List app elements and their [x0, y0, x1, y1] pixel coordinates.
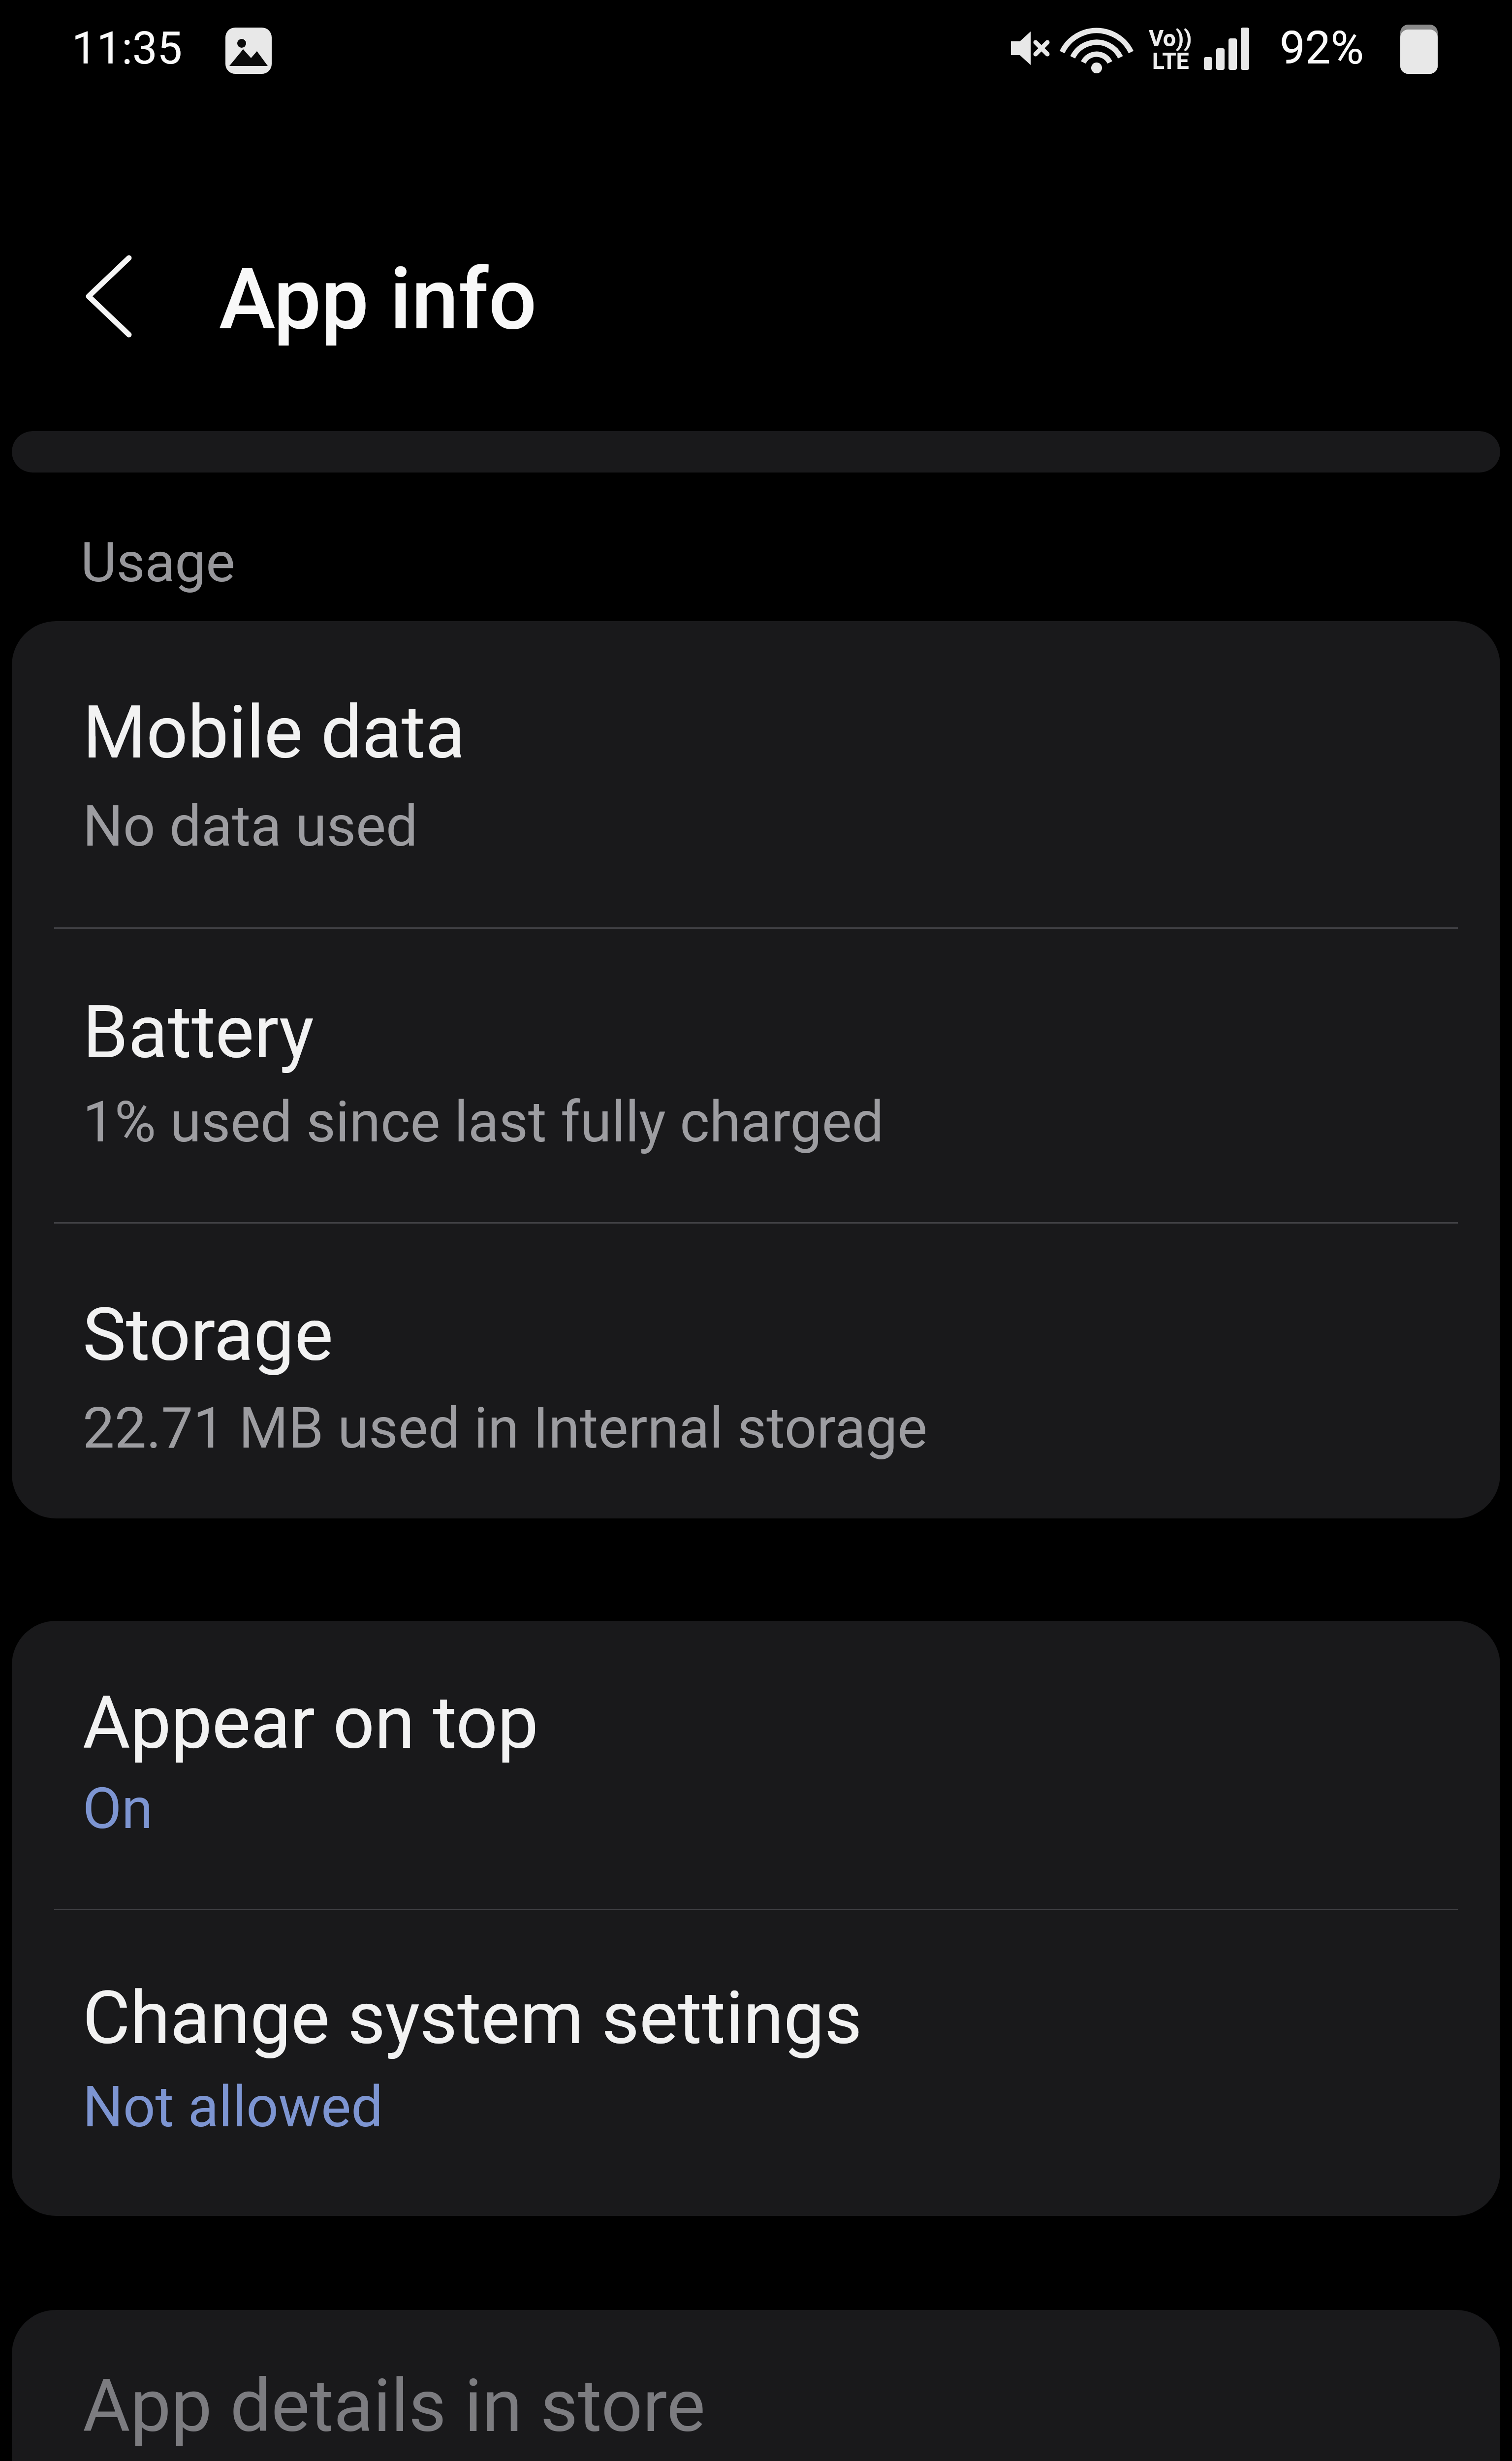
button[interactable]: Storage: [12, 1224, 1500, 1518]
staticText: 11:35: [72, 23, 183, 74]
staticText: Not allowed: [83, 2074, 383, 2140]
button[interactable]: Mobile data: [12, 621, 1500, 927]
staticText: Mobile data: [83, 690, 465, 775]
staticText: Usage: [81, 530, 235, 595]
button[interactable]: Appear on top: [12, 1621, 1500, 1909]
staticText: Storage: [83, 1293, 333, 1378]
staticText: 92%: [1280, 22, 1364, 75]
staticText: App details in store: [83, 2364, 705, 2449]
staticText: No data used: [83, 793, 418, 859]
button[interactable]: [69, 251, 153, 345]
staticText: LTE: [1152, 48, 1189, 74]
staticText: App info: [219, 250, 537, 349]
button[interactable]: Change system settings: [12, 1910, 1500, 2216]
button[interactable]: Battery: [12, 929, 1500, 1222]
staticText: Change system settings: [83, 1976, 862, 2061]
staticText: Vo)): [1149, 25, 1192, 52]
staticText: 22.71 MB used in Internal storage: [83, 1395, 928, 1461]
staticText: On: [83, 1775, 153, 1842]
staticText: Appear on top: [83, 1680, 538, 1766]
staticText: Battery: [83, 990, 314, 1075]
staticText: 1% used since last fully charged: [83, 1089, 884, 1155]
button[interactable]: App details in store: [12, 2310, 1500, 2461]
